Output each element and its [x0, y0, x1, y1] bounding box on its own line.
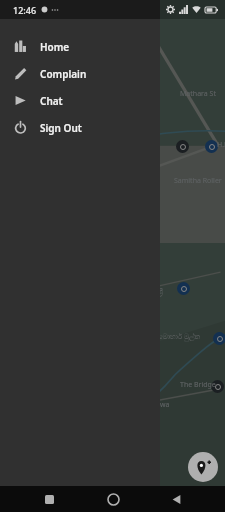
staticText: මොහාර් මුල්ත [158, 332, 220, 342]
button[interactable]: Home [98, 486, 128, 512]
staticText: wa [160, 400, 222, 410]
button[interactable]: Sign Out [0, 114, 160, 141]
staticText: Sign Out [40, 121, 82, 135]
button[interactable]: Add location [188, 452, 218, 482]
staticText: H.M [217, 140, 225, 150]
staticText: 12:46 [13, 4, 37, 16]
staticText: Samitha Roller [174, 176, 225, 186]
button[interactable]: Back [161, 486, 191, 512]
button[interactable]: Chat [0, 87, 160, 114]
staticText: Complain [40, 67, 87, 81]
staticText: Mathara St [180, 89, 225, 99]
button[interactable]: Complain [0, 60, 160, 87]
button[interactable]: Recents [34, 486, 64, 512]
staticText: The Bridge [180, 380, 225, 390]
staticText: Chat [40, 94, 63, 108]
staticText: Home [40, 40, 70, 54]
staticText: ශ්‍රී [158, 288, 220, 295]
button[interactable]: Home [0, 33, 160, 60]
